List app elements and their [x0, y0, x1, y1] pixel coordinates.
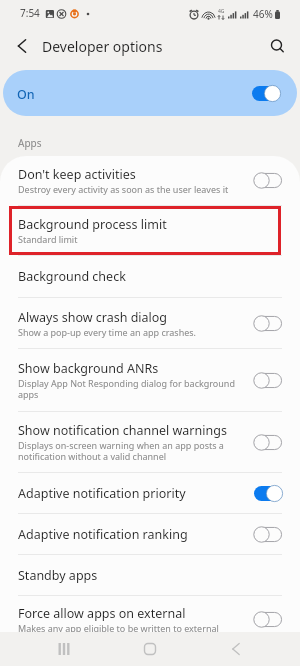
button[interactable]: Search — [266, 35, 288, 57]
staticText: Background process limit — [18, 216, 167, 233]
button[interactable]: Background process limit — [0, 206, 300, 256]
staticText: Force allow apps on external — [18, 605, 186, 622]
staticText: Always show crash dialog — [18, 309, 168, 326]
staticText: Show a pop-up every time an app crashes. — [18, 326, 197, 338]
button[interactable]: Standby apps — [0, 555, 300, 596]
staticText: 4G — [218, 8, 225, 15]
button[interactable]: Adaptive notification ranking — [0, 514, 300, 555]
staticText: 7:54 — [20, 6, 40, 20]
staticText: Display App Not Responding dialog for ba… — [18, 377, 246, 401]
staticText: Developer options — [42, 37, 163, 56]
button[interactable]: Force allow apps on external — [0, 596, 300, 632]
staticText: Standard limit — [18, 233, 78, 245]
button[interactable]: Show notification channel warnings — [0, 412, 300, 473]
button[interactable]: Don't keep activities — [0, 156, 300, 206]
staticText: 46% — [253, 7, 273, 21]
staticText: Destroy every activity as soon as the us… — [18, 183, 229, 195]
staticText: Apps — [18, 136, 42, 150]
button[interactable]: Adaptive notification priority — [0, 473, 300, 514]
button[interactable]: Show background ANRs — [0, 349, 300, 412]
staticText: Show notification channel warnings — [18, 422, 227, 439]
button[interactable]: Back — [10, 34, 34, 58]
button[interactable]: Recent apps — [42, 632, 86, 666]
staticText: Adaptive notification priority — [18, 485, 186, 502]
button[interactable]: On — [3, 70, 297, 116]
staticText: Displays on-screen warning when an app p… — [18, 439, 246, 463]
staticText: Adaptive notification ranking — [18, 526, 188, 543]
staticText: Show background ANRs — [18, 360, 159, 377]
button[interactable]: Home — [128, 632, 172, 666]
staticText: Don't keep activities — [18, 166, 136, 183]
staticText: Makes any app eligible to be written to … — [18, 622, 219, 632]
button[interactable]: Back — [214, 632, 258, 666]
staticText: Standby apps — [18, 567, 98, 584]
button[interactable]: Background check — [0, 256, 300, 298]
button[interactable]: Always show crash dialog — [0, 298, 300, 349]
staticText: Background check — [18, 268, 126, 285]
staticText: On — [17, 86, 35, 103]
